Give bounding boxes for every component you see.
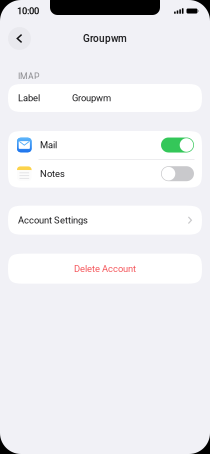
staticText: Delete Account bbox=[74, 263, 136, 274]
staticText: Notes bbox=[40, 168, 65, 179]
staticText: Mail bbox=[40, 139, 57, 150]
staticText: Groupwm bbox=[72, 92, 111, 103]
button[interactable]: Back bbox=[8, 27, 31, 50]
button[interactable]: Delete Account bbox=[0, 254, 210, 284]
staticText: 10:00 bbox=[17, 5, 39, 16]
button[interactable]: Account Settings bbox=[0, 206, 210, 235]
staticText: IMAP bbox=[18, 71, 39, 82]
staticText: Groupwm bbox=[83, 33, 127, 44]
staticText: Label bbox=[18, 92, 40, 103]
staticText: Account Settings bbox=[18, 215, 88, 226]
